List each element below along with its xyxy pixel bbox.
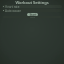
- button[interactable]: Heart rate: [2, 5, 62, 8]
- button[interactable]: More: [3, 16, 61, 18]
- staticText: Workout Settings: [15, 0, 49, 5]
- button[interactable]: Workout Settings: [1, 0, 63, 5]
- button[interactable]: Start: [27, 13, 38, 16]
- staticText: Auto pause: [5, 9, 21, 12]
- other: Round watch bezel: [0, 0, 64, 64]
- staticText: More: [30, 16, 35, 18]
- button[interactable]: Auto pause: [2, 9, 62, 12]
- staticText: Start: [29, 13, 37, 16]
- staticText: Heart rate: [5, 5, 20, 8]
